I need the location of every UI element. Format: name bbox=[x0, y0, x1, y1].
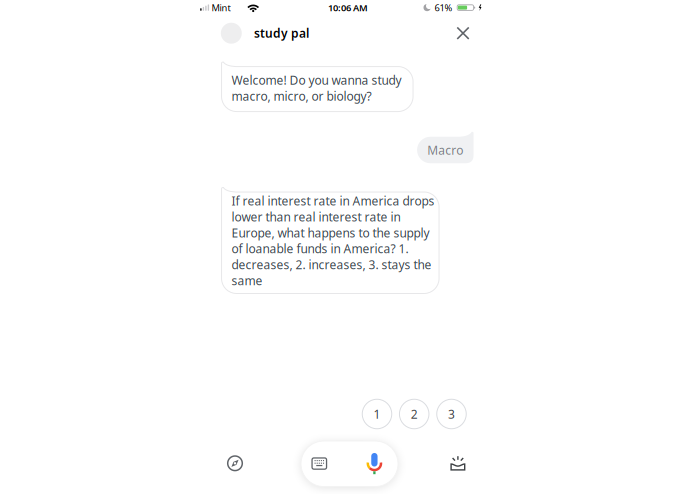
button[interactable]: Keyboard input bbox=[306, 451, 332, 477]
button[interactable]: Close bbox=[449, 19, 477, 47]
staticText: 2 bbox=[411, 406, 418, 422]
staticText: 1 bbox=[373, 406, 380, 422]
button[interactable]: study pal bbox=[221, 23, 309, 44]
button[interactable]: Explore bbox=[219, 447, 251, 479]
staticText: 61% bbox=[434, 1, 452, 14]
button[interactable]: Voice search bbox=[359, 448, 389, 478]
button[interactable]: 2 bbox=[399, 399, 429, 429]
staticText: If real interest rate in America drops l… bbox=[231, 193, 434, 288]
staticText: Mint bbox=[212, 1, 231, 14]
button[interactable]: 3 bbox=[437, 399, 466, 429]
staticText: Macro bbox=[427, 142, 463, 158]
staticText: study pal bbox=[254, 25, 309, 41]
button[interactable]: Updates bbox=[445, 450, 471, 476]
staticText: Welcome! Do you wanna study macro, micro… bbox=[231, 72, 401, 104]
staticText: 10:06 AM bbox=[328, 1, 368, 14]
button[interactable]: 1 bbox=[362, 399, 392, 429]
staticText: 3 bbox=[448, 406, 455, 422]
